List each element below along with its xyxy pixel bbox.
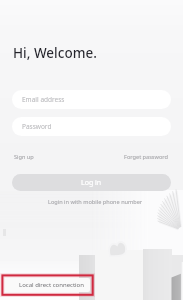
staticText: Email address	[22, 95, 65, 104]
button[interactable]: Log in	[12, 174, 171, 191]
button[interactable]: Password	[12, 117, 171, 136]
staticText: Password	[22, 122, 52, 131]
button[interactable]: Login in with mobile phone number	[48, 198, 143, 206]
staticText: Sign up	[14, 153, 34, 161]
staticText: Local direct connection	[19, 281, 84, 289]
staticText: Forget password	[124, 153, 168, 161]
staticText: Log in	[81, 178, 102, 188]
staticText: Login in with mobile phone number	[48, 198, 143, 206]
staticText: Hi, Welcome.	[13, 44, 97, 62]
button[interactable]: Forget password	[124, 153, 168, 161]
button[interactable]: Sign up	[14, 153, 34, 161]
button[interactable]: Local direct connection	[5, 278, 90, 292]
button[interactable]: Email address	[12, 90, 171, 109]
